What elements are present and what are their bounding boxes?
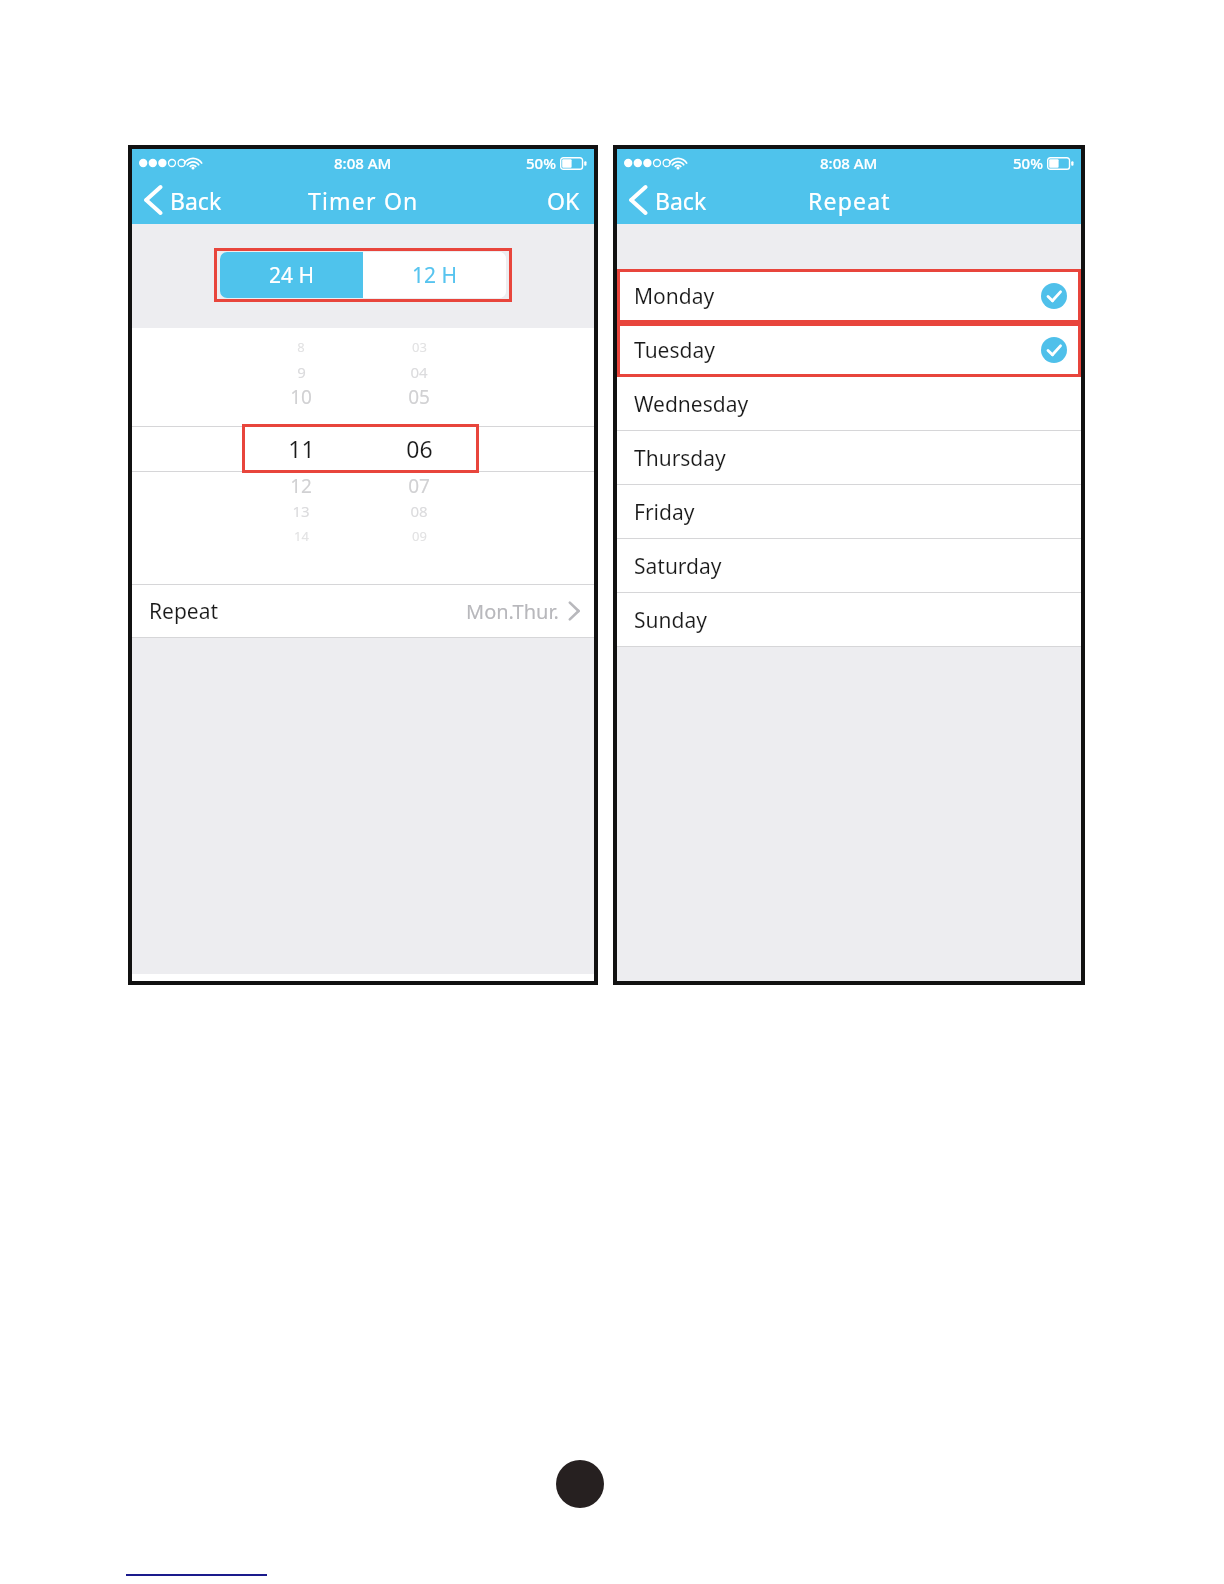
button[interactable]: Thursday xyxy=(617,431,1081,485)
button[interactable]: Friday xyxy=(617,485,1081,539)
staticText: 50% xyxy=(1013,153,1043,173)
staticText: Saturday xyxy=(634,552,722,581)
staticText: Monday xyxy=(634,282,715,311)
staticText: 09 xyxy=(412,527,427,545)
button[interactable]: Back xyxy=(132,176,236,224)
staticText: 08 xyxy=(410,501,428,521)
staticText: 07 xyxy=(408,473,430,499)
button[interactable]: Repeat xyxy=(132,585,594,637)
button[interactable]: Wednesday xyxy=(617,377,1081,431)
button[interactable]: 12 H xyxy=(363,252,506,298)
staticText: 03 xyxy=(412,338,427,356)
staticText: Sunday xyxy=(634,606,707,635)
staticText: 13 xyxy=(292,501,310,521)
staticText: 10 xyxy=(290,384,312,410)
staticText: 12 xyxy=(290,473,312,499)
staticText: 12 H xyxy=(412,261,458,290)
staticText: Mon.Thur. xyxy=(466,598,559,625)
staticText: 8:08 AM xyxy=(820,153,878,173)
staticText: Tuesday xyxy=(634,336,715,365)
staticText: Repeat xyxy=(808,185,891,216)
staticText: Thursday xyxy=(634,444,726,473)
staticText: Wednesday xyxy=(634,390,749,419)
staticText: 8:08 AM xyxy=(334,153,392,173)
staticText: 50% xyxy=(526,153,556,173)
staticText: 05 xyxy=(408,384,430,410)
staticText: OK xyxy=(547,185,580,216)
staticText: Back xyxy=(655,185,707,216)
staticText: 8 xyxy=(297,338,305,356)
button[interactable]: Back xyxy=(617,176,721,224)
button[interactable]: OK xyxy=(533,176,594,224)
button[interactable]: Saturday xyxy=(617,539,1081,593)
staticText: 14 xyxy=(294,527,309,545)
staticText: 04 xyxy=(410,362,428,382)
staticText: Friday xyxy=(634,498,695,527)
button[interactable]: Tuesday xyxy=(617,323,1081,377)
staticText: Repeat xyxy=(149,597,219,626)
button[interactable]: Sunday xyxy=(617,593,1081,647)
staticText: 9 xyxy=(297,362,306,382)
staticText: 11 xyxy=(288,433,315,464)
button[interactable]: 24 H xyxy=(220,252,363,298)
staticText: 06 xyxy=(406,433,433,464)
button[interactable]: Monday xyxy=(617,269,1081,323)
staticText: 24 H xyxy=(269,261,315,290)
staticText: Timer On xyxy=(308,185,419,216)
staticText: Back xyxy=(170,185,222,216)
